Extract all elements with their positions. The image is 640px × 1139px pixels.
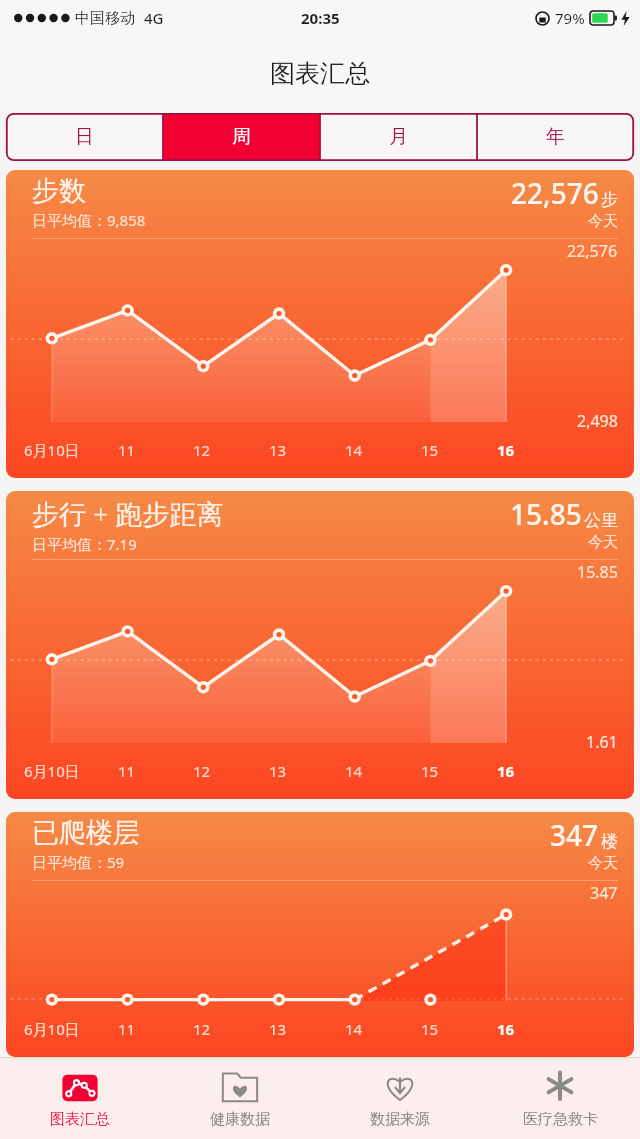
staticText: 图表汇总: [270, 58, 370, 89]
staticText: 13: [269, 761, 287, 781]
button[interactable]: 年: [477, 113, 634, 161]
staticText: 楼: [601, 831, 618, 852]
staticText: 13: [269, 440, 287, 460]
staticText: 图表汇总: [50, 1110, 110, 1129]
button[interactable]: 步行 + 跑步距离: [6, 491, 634, 799]
staticText: 1.61: [586, 731, 618, 753]
staticText: 14: [345, 1019, 363, 1039]
button[interactable]: 已爬楼层: [6, 812, 634, 1057]
staticText: 11: [118, 1019, 136, 1039]
staticText: 日平均值：9,858: [32, 210, 146, 230]
staticText: 15: [421, 761, 439, 781]
staticText: 16: [497, 1019, 515, 1039]
staticText: 日平均值：7.19: [32, 534, 137, 554]
staticText: 月: [389, 125, 408, 149]
staticText: 12: [193, 761, 211, 781]
staticText: 公里: [584, 510, 618, 531]
staticText: 数据来源: [370, 1110, 430, 1129]
staticText: 15: [421, 1019, 439, 1039]
staticText: 15.85: [577, 561, 618, 583]
staticText: 今天: [588, 533, 618, 552]
staticText: 347: [590, 882, 618, 904]
button[interactable]: 健康数据: [160, 1058, 320, 1139]
button[interactable]: 图表汇总: [0, 1058, 160, 1139]
button[interactable]: 数据来源: [320, 1058, 480, 1139]
staticText: 健康数据: [210, 1110, 270, 1129]
staticText: 20:35: [301, 8, 340, 28]
staticText: 347: [550, 816, 599, 854]
staticText: 日平均值：59: [32, 852, 125, 872]
staticText: 6月10日: [24, 440, 80, 460]
staticText: 步行 + 跑步距离: [32, 495, 224, 532]
staticText: 6月10日: [24, 1019, 80, 1039]
staticText: 日: [75, 125, 94, 149]
staticText: 16: [497, 440, 515, 460]
staticText: 今天: [588, 854, 618, 873]
staticText: 22,576: [511, 174, 599, 212]
staticText: 医疗急救卡: [523, 1110, 598, 1129]
staticText: 12: [193, 440, 211, 460]
button[interactable]: 步数: [6, 170, 634, 478]
staticText: 今天: [588, 212, 618, 231]
staticText: 6月10日: [24, 761, 80, 781]
staticText: 年: [546, 125, 565, 149]
button[interactable]: 月: [320, 113, 477, 161]
staticText: 22,576: [567, 240, 618, 262]
staticText: 2,498: [577, 410, 618, 432]
staticText: 中国移动: [75, 9, 135, 28]
staticText: 12: [193, 1019, 211, 1039]
staticText: 周: [232, 125, 251, 149]
button[interactable]: 医疗急救卡: [480, 1058, 640, 1139]
staticText: 15: [421, 440, 439, 460]
staticText: 步: [601, 189, 618, 210]
button[interactable]: 周: [163, 113, 320, 161]
staticText: 步数: [32, 174, 86, 208]
button[interactable]: 日: [6, 113, 163, 161]
staticText: 15.85: [510, 495, 582, 533]
staticText: 14: [345, 440, 363, 460]
staticText: 11: [118, 761, 136, 781]
staticText: 已爬楼层: [32, 816, 140, 850]
staticText: 4G: [144, 8, 164, 28]
staticText: 14: [345, 761, 363, 781]
staticText: 79%: [555, 8, 585, 28]
staticText: 11: [118, 440, 136, 460]
staticText: 16: [497, 761, 515, 781]
staticText: 13: [269, 1019, 287, 1039]
